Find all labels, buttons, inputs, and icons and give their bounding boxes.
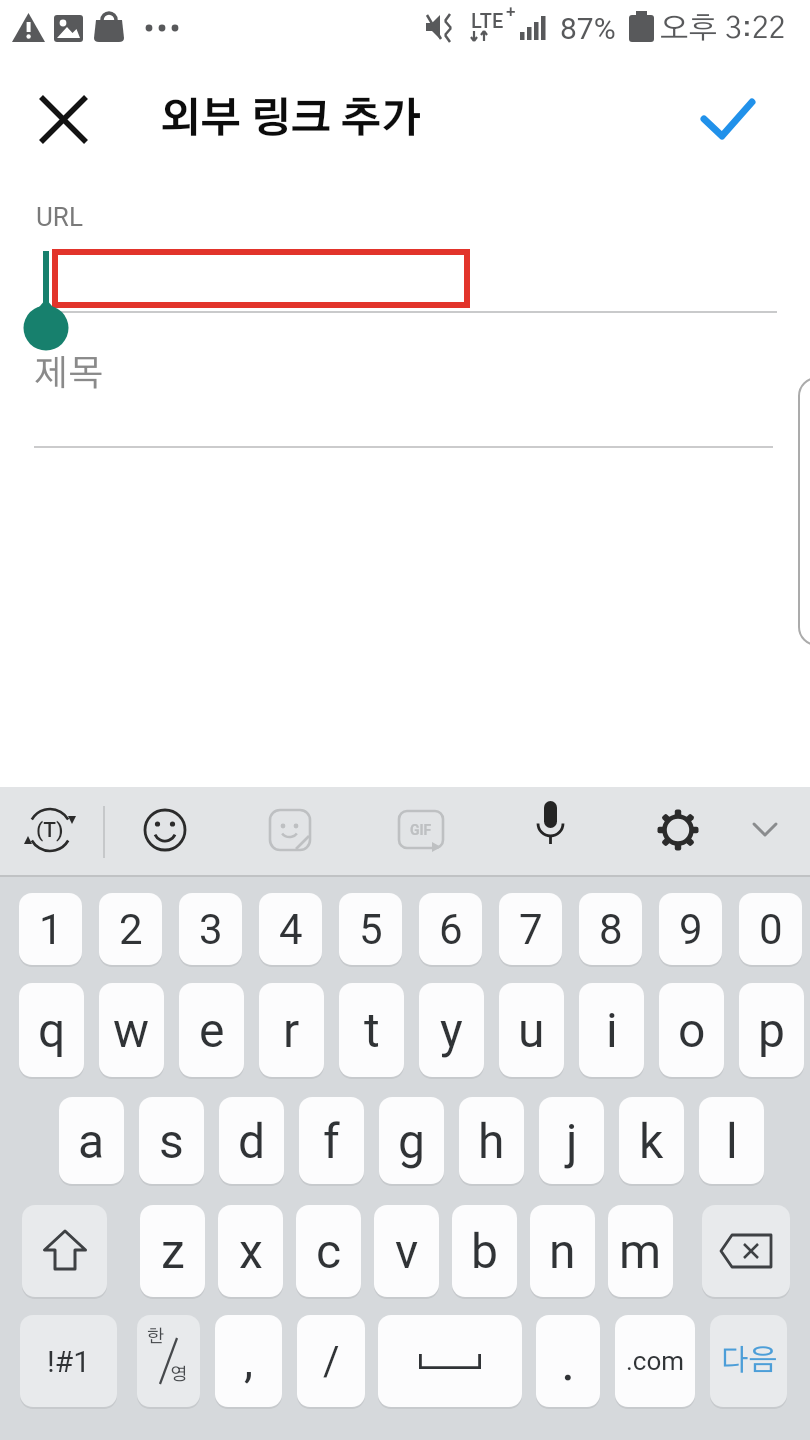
button[interactable]: k — [619, 1097, 684, 1184]
button[interactable] — [527, 806, 575, 854]
button[interactable] — [396, 806, 444, 854]
staticText: 영 — [170, 1366, 188, 1384]
button[interactable]: m — [608, 1205, 673, 1297]
staticText: t — [364, 1002, 380, 1058]
button[interactable]: f — [299, 1097, 364, 1184]
staticText: 4 — [279, 905, 303, 954]
button[interactable]: 4 — [259, 893, 322, 965]
staticText: q — [38, 1002, 66, 1058]
staticText: (T) — [36, 818, 64, 843]
staticText: z — [161, 1223, 185, 1279]
staticText: v — [395, 1223, 419, 1279]
button[interactable]: p — [739, 983, 804, 1077]
staticText: p — [758, 1002, 785, 1058]
staticText: c — [316, 1223, 342, 1279]
staticText: 8 — [599, 905, 623, 954]
staticText: !#1 — [47, 1344, 91, 1379]
button[interactable] — [141, 806, 189, 854]
button[interactable]: h — [459, 1097, 524, 1184]
staticText: s — [159, 1113, 184, 1169]
button[interactable]: r — [259, 983, 324, 1077]
button[interactable] — [26, 806, 74, 854]
staticText: l — [726, 1113, 738, 1169]
staticText: / — [323, 1338, 340, 1385]
button[interactable]: t — [339, 983, 404, 1077]
button[interactable]: / — [297, 1315, 365, 1407]
button[interactable]: e — [179, 983, 244, 1077]
button[interactable]: y — [419, 983, 484, 1077]
button[interactable]: 0 — [739, 893, 802, 965]
button[interactable] — [686, 80, 770, 158]
button[interactable] — [33, 232, 777, 312]
button[interactable]: g — [379, 1097, 444, 1184]
button[interactable]: q — [19, 983, 84, 1077]
staticText: 6 — [439, 905, 463, 954]
button[interactable]: .com — [615, 1315, 695, 1407]
button[interactable]: 한 — [137, 1315, 200, 1407]
button[interactable] — [24, 80, 102, 158]
button[interactable] — [654, 806, 702, 854]
button[interactable]: i — [579, 983, 644, 1077]
staticText: 3 — [199, 905, 223, 954]
staticText: , — [244, 1334, 254, 1388]
button[interactable] — [22, 1205, 107, 1297]
button[interactable]: 7 — [499, 893, 562, 965]
staticText: 9 — [679, 905, 703, 954]
button[interactable]: c — [296, 1205, 361, 1297]
staticText: 5 — [359, 905, 383, 954]
button[interactable]: 9 — [659, 893, 722, 965]
staticText: 7 — [519, 905, 543, 954]
staticText: n — [549, 1223, 576, 1279]
staticText: 0 — [759, 905, 783, 954]
staticText: i — [606, 1002, 618, 1058]
button[interactable]: 다음 — [710, 1315, 787, 1407]
button[interactable]: . — [536, 1315, 600, 1407]
staticText: 2 — [119, 905, 143, 954]
staticText: LTE — [471, 9, 504, 32]
staticText: b — [471, 1223, 498, 1279]
button[interactable]: j — [539, 1097, 604, 1184]
button[interactable]: o — [659, 983, 724, 1077]
button[interactable] — [34, 350, 773, 447]
staticText: m — [619, 1223, 662, 1279]
button[interactable]: 2 — [99, 893, 162, 965]
staticText: 제목 — [34, 356, 104, 392]
button[interactable]: x — [218, 1205, 283, 1297]
staticText: j — [566, 1113, 578, 1169]
button[interactable]: 5 — [339, 893, 402, 965]
staticText: .com — [626, 1346, 685, 1376]
button[interactable]: s — [139, 1097, 204, 1184]
button[interactable] — [266, 806, 314, 854]
staticText: o — [678, 1002, 706, 1058]
button[interactable] — [378, 1315, 522, 1407]
button[interactable] — [702, 1205, 790, 1297]
button[interactable]: v — [374, 1205, 439, 1297]
staticText: e — [199, 1002, 225, 1058]
staticText: 한 — [147, 1328, 165, 1346]
button[interactable]: b — [452, 1205, 517, 1297]
staticText: URL — [36, 202, 83, 232]
staticText: x — [239, 1223, 263, 1279]
staticText: 오후 3:22 — [660, 14, 786, 44]
staticText: 1 — [39, 905, 63, 954]
staticText: u — [518, 1002, 545, 1058]
button[interactable]: , — [215, 1315, 282, 1407]
button[interactable]: 6 — [419, 893, 482, 965]
staticText: k — [639, 1113, 664, 1169]
button[interactable]: w — [99, 983, 164, 1077]
staticText: . — [561, 1330, 576, 1393]
staticText: a — [78, 1113, 105, 1169]
button[interactable]: d — [219, 1097, 284, 1184]
staticText: y — [440, 1002, 463, 1058]
button[interactable]: z — [140, 1205, 205, 1297]
button[interactable]: 3 — [179, 893, 242, 965]
button[interactable]: 1 — [19, 893, 82, 965]
button[interactable]: l — [699, 1097, 764, 1184]
button[interactable]: !#1 — [20, 1315, 117, 1407]
staticText: f — [323, 1113, 340, 1169]
button[interactable]: n — [530, 1205, 595, 1297]
button[interactable]: a — [59, 1097, 124, 1184]
button[interactable]: u — [499, 983, 564, 1077]
button[interactable] — [741, 806, 789, 854]
button[interactable]: 8 — [579, 893, 642, 965]
